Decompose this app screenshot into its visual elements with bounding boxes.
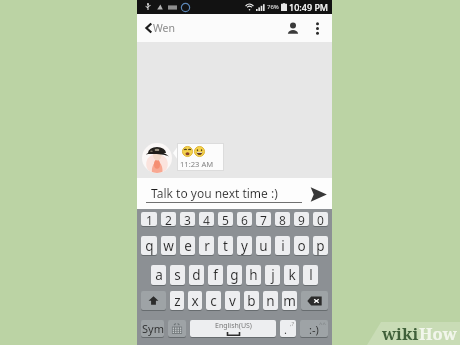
staticText: h <box>249 266 258 284</box>
staticText: Sym <box>142 321 164 336</box>
staticText: s <box>174 266 181 284</box>
button[interactable]: s <box>170 265 185 285</box>
button[interactable]: k <box>284 265 299 285</box>
button[interactable]: 5 <box>218 212 233 226</box>
staticText: q <box>145 237 154 255</box>
staticText: j <box>271 266 275 284</box>
staticText: ,? <box>290 320 295 328</box>
staticText: p <box>316 237 325 255</box>
staticText: w <box>163 237 174 255</box>
button[interactable]: r <box>199 236 214 255</box>
staticText: 76% <box>267 3 279 11</box>
button[interactable]: More options <box>306 14 328 42</box>
staticText: 11:23 AM <box>180 159 214 169</box>
button[interactable]: m <box>282 291 297 310</box>
staticText: 4 <box>203 212 210 226</box>
staticText: d <box>192 266 201 284</box>
staticText: n <box>266 292 275 310</box>
staticText: Talk to you next time :) <box>151 185 278 201</box>
staticText: m <box>283 292 296 310</box>
staticText: 7 <box>260 212 267 226</box>
staticText: u <box>259 237 268 255</box>
button[interactable]: z <box>170 291 184 310</box>
staticText: ^^ <box>319 320 326 328</box>
staticText: c <box>210 292 217 310</box>
button[interactable]: Send <box>307 182 330 206</box>
button[interactable]: 3 <box>180 212 195 226</box>
button[interactable]: f <box>208 265 223 285</box>
staticText: 2 <box>165 212 172 226</box>
button[interactable]: Wen <box>137 14 183 42</box>
staticText: . <box>284 322 287 337</box>
button[interactable]: q <box>141 236 157 255</box>
staticText: English(US) <box>215 321 252 331</box>
button[interactable]: 0 <box>313 212 328 226</box>
button[interactable]: n <box>263 291 278 310</box>
staticText: x <box>191 292 199 310</box>
button[interactable]: y <box>237 236 252 255</box>
staticText: 8 <box>279 212 286 226</box>
button[interactable]: 4 <box>199 212 214 226</box>
button[interactable]: Sym <box>141 320 164 337</box>
staticText: 9 <box>298 212 305 226</box>
button[interactable]: o <box>294 236 309 255</box>
button[interactable]: English(US) <box>190 320 276 337</box>
staticText: i <box>281 237 285 255</box>
button[interactable]: u <box>256 236 271 255</box>
button[interactable]: 6 <box>237 212 252 226</box>
staticText: z <box>174 292 181 310</box>
button[interactable]: a <box>151 265 166 285</box>
button[interactable]: t <box>218 236 233 255</box>
button[interactable]: g <box>227 265 242 285</box>
staticText: Wen <box>153 21 175 35</box>
button[interactable]: j <box>265 265 280 285</box>
button[interactable]: Contact info <box>280 14 306 42</box>
staticText: :-) <box>309 322 319 337</box>
staticText: e <box>184 237 192 255</box>
button[interactable]: l <box>303 265 318 285</box>
button[interactable]: 1 <box>141 212 157 226</box>
button[interactable]: h <box>246 265 261 285</box>
staticText: g <box>230 266 239 284</box>
button[interactable]: 8 <box>275 212 290 226</box>
staticText: y <box>241 237 248 255</box>
button[interactable]: ^^ <box>300 320 328 337</box>
staticText: k <box>288 266 296 284</box>
staticText: 0 <box>317 212 324 226</box>
button[interactable]: w <box>161 236 176 255</box>
button[interactable]: c <box>206 291 221 310</box>
button[interactable]: 2 <box>161 212 176 226</box>
button[interactable]: x <box>188 291 202 310</box>
staticText: t <box>223 237 228 255</box>
staticText: 1 <box>146 212 153 226</box>
staticText: 6 <box>241 212 248 226</box>
staticText: 3 <box>184 212 191 226</box>
button[interactable] <box>141 291 166 310</box>
staticText: r <box>204 237 210 255</box>
button[interactable] <box>168 320 186 337</box>
staticText: v <box>229 292 236 310</box>
button[interactable]: e <box>180 236 195 255</box>
button[interactable]: 11:23 AM <box>177 143 224 171</box>
button[interactable]: 7 <box>256 212 271 226</box>
staticText: 10:49 PM <box>289 1 329 13</box>
button[interactable]: 9 <box>294 212 309 226</box>
button[interactable]: ,? <box>280 320 296 337</box>
button[interactable]: d <box>189 265 204 285</box>
button[interactable]: v <box>225 291 240 310</box>
staticText: b <box>247 292 256 310</box>
staticText: o <box>297 237 306 255</box>
button[interactable]: Talk to you next time :) <box>146 185 307 203</box>
staticText: wiki <box>382 322 419 344</box>
staticText: How <box>419 322 457 344</box>
button[interactable]: b <box>244 291 259 310</box>
staticText: f <box>213 266 218 284</box>
button[interactable]: i <box>275 236 290 255</box>
button[interactable]: p <box>313 236 328 255</box>
button[interactable] <box>301 291 328 310</box>
staticText: l <box>309 266 313 284</box>
staticText: 5 <box>222 212 229 226</box>
staticText: a <box>155 266 163 284</box>
